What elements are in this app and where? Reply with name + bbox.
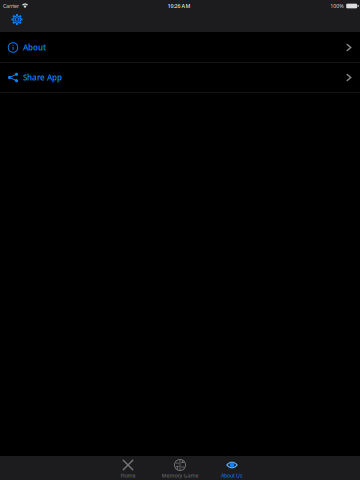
staticText: 10:26 AM [168, 2, 191, 10]
staticText: 100% [330, 2, 343, 10]
button[interactable]: Settings [4, 12, 30, 27]
button[interactable]: Home [102, 456, 154, 480]
button[interactable]: About Us [206, 456, 258, 480]
staticText: Share App [23, 72, 62, 83]
staticText: Home [120, 472, 135, 479]
button[interactable]: Memory Game [154, 456, 206, 480]
staticText: Memory Game [161, 472, 198, 479]
staticText: About Us [221, 472, 243, 479]
button[interactable]: About [0, 33, 360, 63]
staticText: Carrier [3, 2, 19, 10]
button[interactable]: Share App [0, 63, 360, 93]
staticText: About [23, 42, 46, 53]
